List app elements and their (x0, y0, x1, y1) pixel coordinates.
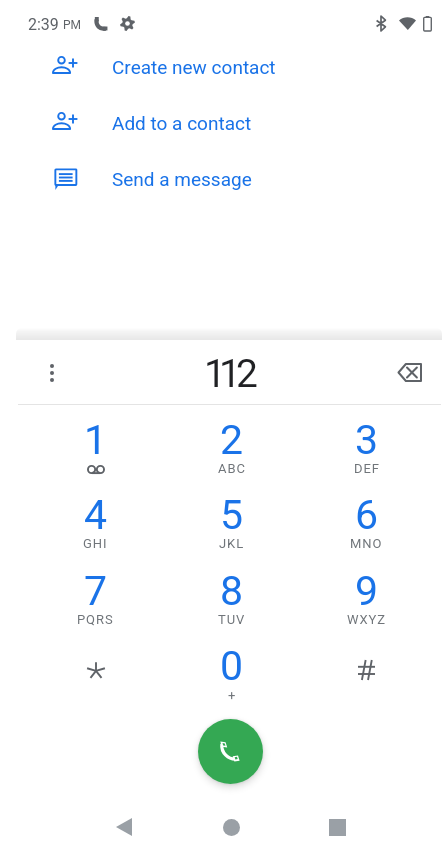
staticText: ABC (218, 461, 246, 475)
staticText: 0 (220, 642, 244, 690)
button[interactable]: Back (106, 809, 142, 845)
staticText: 2:39 (28, 15, 59, 34)
staticText: WXYZ (347, 612, 386, 626)
button[interactable] (28, 629, 163, 704)
staticText: 2 (220, 416, 244, 464)
staticText: 8 (220, 567, 244, 615)
button[interactable]: 9 (299, 554, 434, 629)
button[interactable]: Call (198, 719, 263, 784)
button[interactable]: 7 (28, 554, 163, 629)
button[interactable]: More options (34, 345, 70, 381)
button[interactable]: 8 (164, 554, 299, 629)
staticText: PM (63, 18, 82, 32)
button[interactable]: Add to a contact (0, 95, 448, 151)
button[interactable]: Backspace (392, 345, 428, 381)
staticText: 7 (84, 567, 108, 615)
button[interactable]: 5 (164, 478, 299, 553)
button[interactable]: 3 (299, 403, 434, 478)
staticText: Create new contact (112, 56, 276, 78)
staticText: 9 (355, 567, 379, 615)
button[interactable]: Home (213, 809, 249, 845)
staticText: 1 (84, 416, 108, 464)
staticText: 1 (204, 351, 226, 397)
staticText: Send a message (112, 168, 252, 190)
staticText: 5 (220, 491, 244, 539)
button[interactable]: Recent apps (319, 809, 355, 845)
staticText: 4 (84, 491, 108, 539)
button[interactable]: 0 (164, 629, 299, 704)
button[interactable] (299, 629, 434, 704)
staticText: MNO (350, 536, 383, 550)
staticText: PQRS (77, 612, 114, 626)
button[interactable]: 6 (299, 478, 434, 553)
staticText: 6 (355, 491, 379, 539)
button[interactable]: Create new contact (0, 39, 448, 95)
staticText: Add to a contact (112, 112, 252, 134)
staticText: TUV (218, 612, 246, 626)
staticText: + (228, 688, 237, 702)
staticText: 2 (236, 351, 258, 397)
staticText: DEF (354, 461, 380, 475)
staticText: 1 (219, 351, 241, 397)
staticText: JKL (219, 536, 245, 550)
staticText: 3 (355, 416, 379, 464)
button[interactable]: 1 (28, 403, 163, 478)
button[interactable]: Send a message (0, 151, 448, 207)
button[interactable]: 2 (164, 403, 299, 478)
staticText: GHI (83, 536, 108, 550)
button[interactable]: 4 (28, 478, 163, 553)
